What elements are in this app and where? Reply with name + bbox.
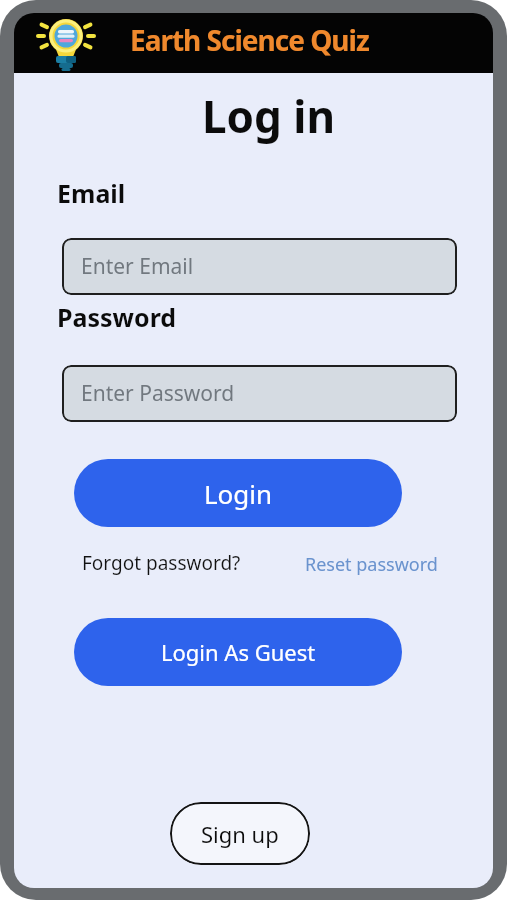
staticText: Earth Science Quiz [130, 21, 369, 59]
staticText: Log in [202, 86, 336, 146]
staticText: Enter Password [81, 379, 235, 408]
staticText: Password [57, 300, 177, 334]
button[interactable]: Login As Guest [74, 618, 402, 686]
button[interactable]: Login [74, 459, 402, 527]
staticText: Email [57, 176, 126, 210]
staticText: Login [204, 476, 273, 511]
staticText: Enter Email [81, 252, 194, 281]
button[interactable]: Enter Password [62, 365, 457, 422]
button[interactable]: Forgot password? [82, 550, 241, 576]
staticText: Sign up [201, 819, 279, 849]
button[interactable]: Sign up [170, 802, 310, 865]
staticText: Login As Guest [161, 637, 316, 667]
button[interactable]: Enter Email [62, 238, 457, 295]
button[interactable]: Reset password [305, 552, 438, 577]
